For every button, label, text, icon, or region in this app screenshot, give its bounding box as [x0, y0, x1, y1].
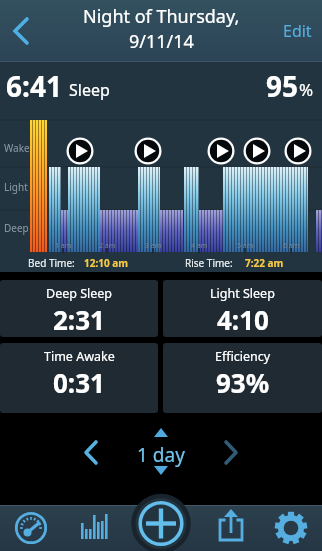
staticText: 3 am [145, 241, 162, 251]
staticText: 5 am [237, 241, 254, 251]
button[interactable]: 1 day [137, 442, 185, 468]
staticText: Deep [4, 221, 29, 235]
button[interactable] [129, 491, 194, 551]
staticText: Deep Sleep [46, 285, 113, 302]
staticText: Efficiency [215, 348, 271, 365]
staticText: 6:41 [6, 67, 62, 105]
button[interactable] [222, 437, 252, 467]
staticText: Rise Time: [185, 256, 233, 270]
staticText: Wake [4, 141, 30, 155]
staticText: 4 am [191, 241, 208, 251]
button[interactable]: Time Awake [0, 343, 158, 413]
staticText: 4:10 [217, 302, 269, 337]
staticText: Time Awake [44, 348, 115, 365]
staticText: 2:31 [53, 302, 105, 337]
button[interactable] [13, 510, 49, 546]
staticText: 6 am [283, 241, 300, 251]
staticText: 12:10 am [84, 256, 129, 270]
staticText: Light [4, 180, 28, 194]
staticText: 1 am [55, 241, 72, 251]
button[interactable] [6, 14, 38, 46]
staticText: Sleep [69, 79, 110, 101]
staticText: 2 am [99, 241, 116, 251]
staticText: Edit [283, 20, 312, 42]
staticText: 9/11/14 [129, 29, 194, 54]
staticText: Light Sleep [210, 285, 275, 302]
button[interactable]: Efficiency [163, 343, 322, 413]
button[interactable]: Deep Sleep [0, 280, 158, 337]
staticText: Night of Thursday, [83, 4, 240, 29]
staticText: 95 [266, 67, 299, 105]
button[interactable] [80, 437, 110, 467]
staticText: Bed Time: [28, 256, 75, 270]
staticText: 7:22 am [245, 256, 284, 270]
staticText: 93% [216, 365, 270, 400]
button[interactable] [273, 510, 309, 546]
button[interactable]: Light Sleep [163, 280, 322, 337]
staticText: % [299, 78, 314, 101]
button[interactable] [213, 510, 249, 546]
staticText: 0:31 [53, 365, 105, 400]
button[interactable]: Edit [283, 20, 312, 42]
button[interactable] [77, 510, 113, 546]
